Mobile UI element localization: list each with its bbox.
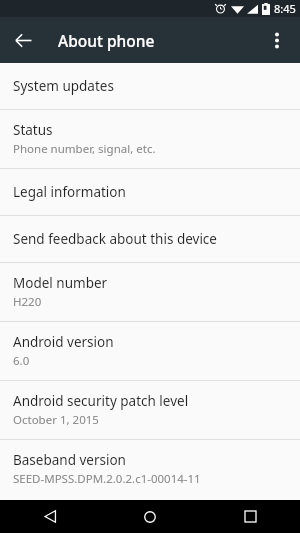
button[interactable]: Back [0,17,46,63]
staticText: Status [13,121,53,139]
button[interactable]: Status [0,110,300,168]
button[interactable]: Android version [0,322,300,380]
staticText: SEED-MPSS.DPM.2.0.2.c1-00014-11 [13,471,201,487]
staticText: October 1, 2015 [13,412,99,428]
staticText: Send feedback about this device [13,230,217,248]
button[interactable]: More options [254,17,300,63]
button[interactable]: Back [0,500,100,533]
button[interactable]: System updates [0,63,300,109]
staticText: Android security patch level [13,392,189,410]
staticText: Baseband version [13,451,126,469]
button[interactable]: Android security patch level [0,381,300,439]
staticText: 8:45 [274,1,296,16]
button[interactable]: Baseband version [0,440,300,498]
button[interactable]: Send feedback about this device [0,216,300,262]
staticText: Phone number, signal, etc. [13,141,156,157]
button[interactable]: Home [100,500,200,533]
staticText: Android version [13,333,114,351]
staticText: Model number [13,274,108,292]
staticText: System updates [13,77,114,95]
staticText: Legal information [13,183,126,201]
staticText: 6.0 [13,353,30,369]
button[interactable]: Legal information [0,169,300,215]
staticText: About phone [58,30,155,51]
button[interactable]: Recent apps [200,500,300,533]
staticText: H220 [13,294,42,310]
button[interactable]: Model number [0,263,300,321]
